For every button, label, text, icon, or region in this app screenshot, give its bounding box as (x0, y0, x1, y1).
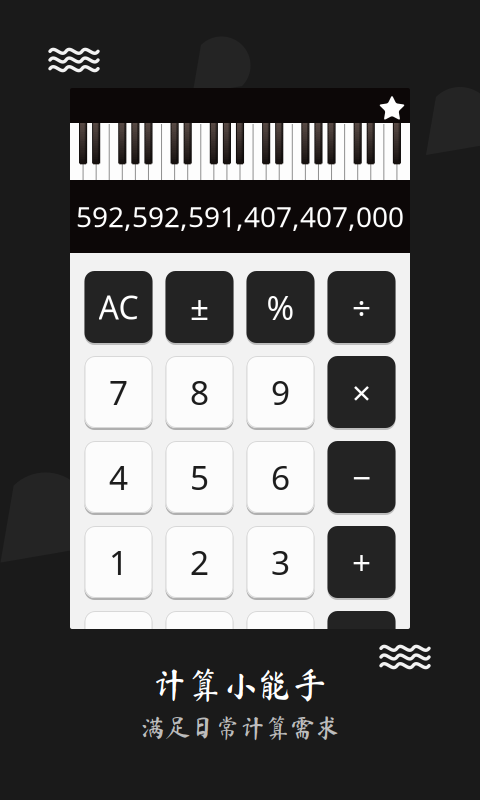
staticText: . (195, 625, 204, 669)
staticText: 7 (109, 370, 128, 414)
staticText: ⌫ (257, 628, 304, 666)
staticText: − (352, 455, 371, 499)
staticText: AC (98, 286, 138, 328)
button[interactable]: 5 (165, 441, 233, 513)
staticText: 9 (271, 370, 290, 414)
staticText: % (266, 285, 294, 329)
staticText: 6 (271, 455, 290, 499)
button[interactable]: 9 (246, 356, 314, 428)
button[interactable]: 2 (165, 526, 233, 598)
button[interactable]: 8 (165, 356, 233, 428)
staticText: ± (190, 285, 209, 329)
staticText: 0 (109, 625, 128, 669)
staticText: 2 (190, 540, 209, 584)
button[interactable]: − (327, 441, 395, 513)
staticText: + (352, 540, 371, 584)
staticText: 5 (190, 455, 209, 499)
button[interactable]: % (246, 271, 314, 343)
button[interactable]: AC (84, 271, 152, 343)
staticText: 满足日常计算需求 (140, 715, 340, 740)
button[interactable]: 7 (84, 356, 152, 428)
button[interactable]: 0 (84, 611, 152, 683)
button[interactable]: ± (165, 271, 233, 343)
staticText: 592,592,591,407,407,000 (76, 198, 404, 235)
staticText: ÷ (352, 285, 371, 329)
button[interactable]: 6 (246, 441, 314, 513)
staticText: 4 (109, 455, 128, 499)
staticText: 计算小能手 (152, 667, 327, 702)
button[interactable]: = (327, 611, 395, 683)
button[interactable]: 4 (84, 441, 152, 513)
button[interactable]: ÷ (327, 271, 395, 343)
button[interactable]: 3 (246, 526, 314, 598)
staticText: × (352, 370, 371, 414)
staticText: 1 (109, 540, 128, 584)
button[interactable]: + (327, 526, 395, 598)
button[interactable]: . (165, 611, 233, 683)
button[interactable]: × (327, 356, 395, 428)
staticText: 3 (271, 540, 290, 584)
button[interactable]: ⌫ (246, 611, 314, 683)
button[interactable]: 1 (84, 526, 152, 598)
staticText: 8 (190, 370, 209, 414)
